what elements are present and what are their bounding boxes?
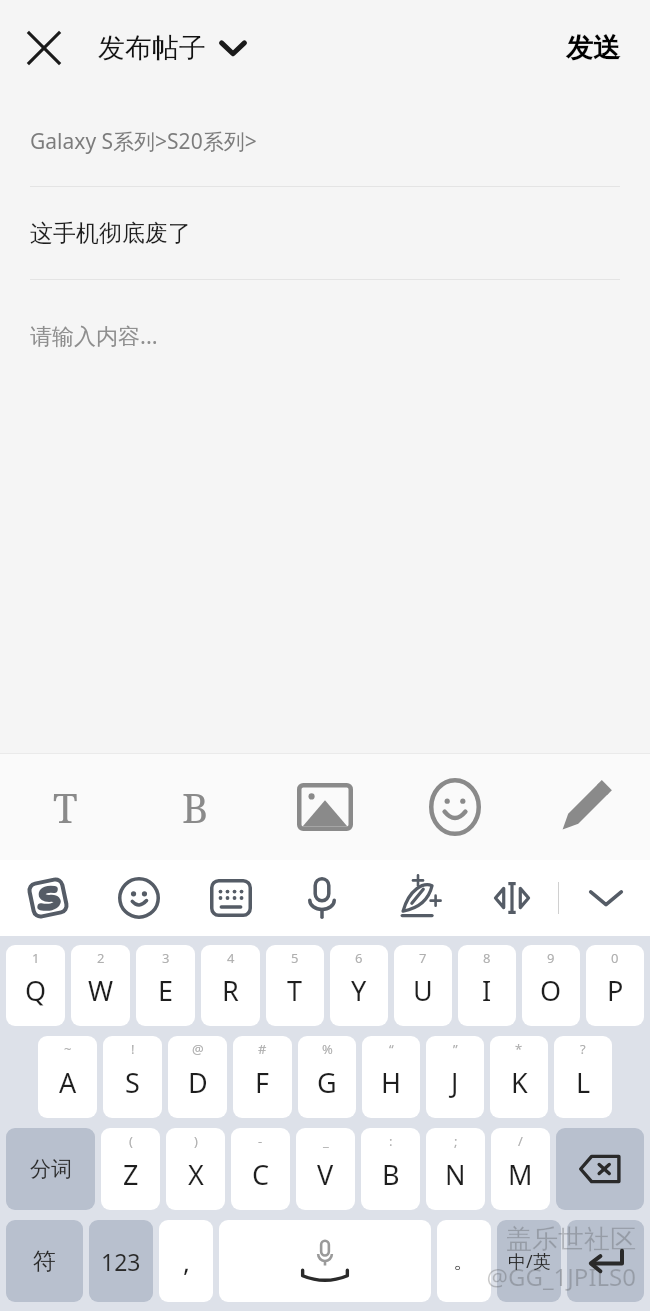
staticText: ) [194, 1132, 198, 1150]
button[interactable]: ; [426, 1128, 485, 1210]
button[interactable]: , [159, 1220, 213, 1302]
button[interactable]: 2 [71, 945, 130, 1026]
staticText: 符 [33, 1247, 56, 1276]
button[interactable]: : [361, 1128, 420, 1210]
staticText: W [88, 972, 114, 1009]
button[interactable]: # [233, 1036, 292, 1118]
button[interactable]: Emoji [105, 864, 173, 932]
staticText: D [188, 1064, 208, 1101]
staticText: Z [123, 1156, 139, 1193]
button[interactable]: Space [219, 1220, 431, 1302]
staticText: L [576, 1064, 591, 1101]
staticText: * [515, 1040, 523, 1058]
staticText: U [413, 972, 433, 1009]
button[interactable]: Insert image [260, 754, 390, 860]
button[interactable]: Galaxy S系列>S20系列> [0, 96, 650, 186]
staticText: 8 [483, 949, 491, 967]
staticText: E [158, 972, 174, 1009]
button[interactable]: 这手机彻底废了 [0, 187, 650, 279]
button[interactable]: 。 [437, 1220, 491, 1302]
staticText: # [258, 1040, 267, 1058]
button[interactable]: ( [101, 1128, 160, 1210]
button[interactable]: % [298, 1036, 356, 1118]
button[interactable]: - [231, 1128, 290, 1210]
staticText: N [445, 1156, 466, 1193]
button[interactable]: 3 [136, 945, 195, 1026]
button[interactable]: Hide keyboard [572, 864, 640, 932]
staticText: C [252, 1156, 270, 1193]
staticText: I [482, 972, 492, 1009]
button[interactable]: ? [554, 1036, 612, 1118]
staticText: V [317, 1156, 334, 1193]
button[interactable]: 4 [201, 945, 260, 1026]
button[interactable]: Close [16, 20, 72, 76]
staticText: S [125, 1064, 140, 1101]
button[interactable]: Draw [520, 754, 650, 860]
button[interactable]: 中/英 [497, 1220, 561, 1302]
staticText: “ [389, 1040, 394, 1058]
staticText: 盖乐世社区 [506, 1223, 636, 1256]
staticText: 分词 [30, 1156, 72, 1182]
staticText: B [382, 1156, 400, 1193]
staticText: K [511, 1064, 528, 1101]
button[interactable]: Emoji [390, 754, 520, 860]
staticText: P [607, 972, 624, 1009]
button[interactable]: / [491, 1128, 550, 1210]
staticText: 发布帖子 [98, 31, 206, 65]
staticText: G [317, 1064, 337, 1101]
staticText: R [222, 972, 239, 1009]
button[interactable]: “ [362, 1036, 420, 1118]
button[interactable]: 0 [586, 945, 644, 1026]
staticText: ; [454, 1132, 458, 1150]
staticText: , [183, 1244, 190, 1279]
button[interactable]: 分词 [6, 1128, 95, 1210]
staticText: @ [192, 1040, 204, 1058]
staticText: 4 [227, 949, 235, 967]
button[interactable]: ~ [38, 1036, 97, 1118]
button[interactable]: Keyboard layout [197, 864, 265, 932]
staticText: Y [351, 972, 367, 1009]
button[interactable]: ” [426, 1036, 484, 1118]
staticText: : [389, 1132, 393, 1150]
staticText: _ [323, 1132, 329, 1150]
button[interactable]: Voice input [288, 864, 356, 932]
button[interactable]: Bold [130, 754, 260, 860]
button[interactable]: 9 [522, 945, 580, 1026]
staticText: @GG_1JPILS0 [486, 1260, 636, 1293]
staticText: O [540, 972, 562, 1009]
staticText: 请输入内容... [30, 320, 158, 350]
button[interactable]: Handwriting [384, 864, 452, 932]
staticText: 发送 [566, 31, 620, 65]
button[interactable]: 发布帖子 [98, 31, 246, 65]
staticText: 2 [97, 949, 105, 967]
button[interactable]: _ [296, 1128, 355, 1210]
staticText: ! [131, 1040, 135, 1058]
button[interactable]: 8 [458, 945, 516, 1026]
button[interactable]: Text style [0, 754, 130, 860]
button[interactable]: 符 [6, 1220, 83, 1302]
button[interactable]: 发送 [566, 31, 620, 65]
button[interactable]: 123 [89, 1220, 153, 1302]
staticText: ” [453, 1040, 458, 1058]
button[interactable]: @ [168, 1036, 227, 1118]
staticText: 6 [355, 949, 363, 967]
staticText: 5 [291, 949, 299, 967]
staticText: ? [580, 1040, 586, 1058]
button[interactable]: ) [166, 1128, 225, 1210]
button[interactable]: 6 [330, 945, 388, 1026]
staticText: 123 [101, 1246, 141, 1277]
staticText: % [322, 1040, 333, 1058]
staticText: ~ [64, 1040, 72, 1058]
button[interactable]: ! [103, 1036, 162, 1118]
button[interactable]: 7 [394, 945, 452, 1026]
staticText: Galaxy S系列>S20系列> [30, 127, 257, 156]
button[interactable]: * [490, 1036, 548, 1118]
staticText: 中/英 [508, 1249, 551, 1274]
button[interactable]: 请输入内容... [0, 280, 650, 753]
button[interactable]: 5 [266, 945, 324, 1026]
button[interactable]: Move cursor [478, 864, 546, 932]
button[interactable]: Backspace [556, 1128, 644, 1210]
button[interactable]: Sogou input [14, 864, 82, 932]
button[interactable]: 1 [6, 945, 65, 1026]
button[interactable]: Enter [567, 1220, 644, 1302]
